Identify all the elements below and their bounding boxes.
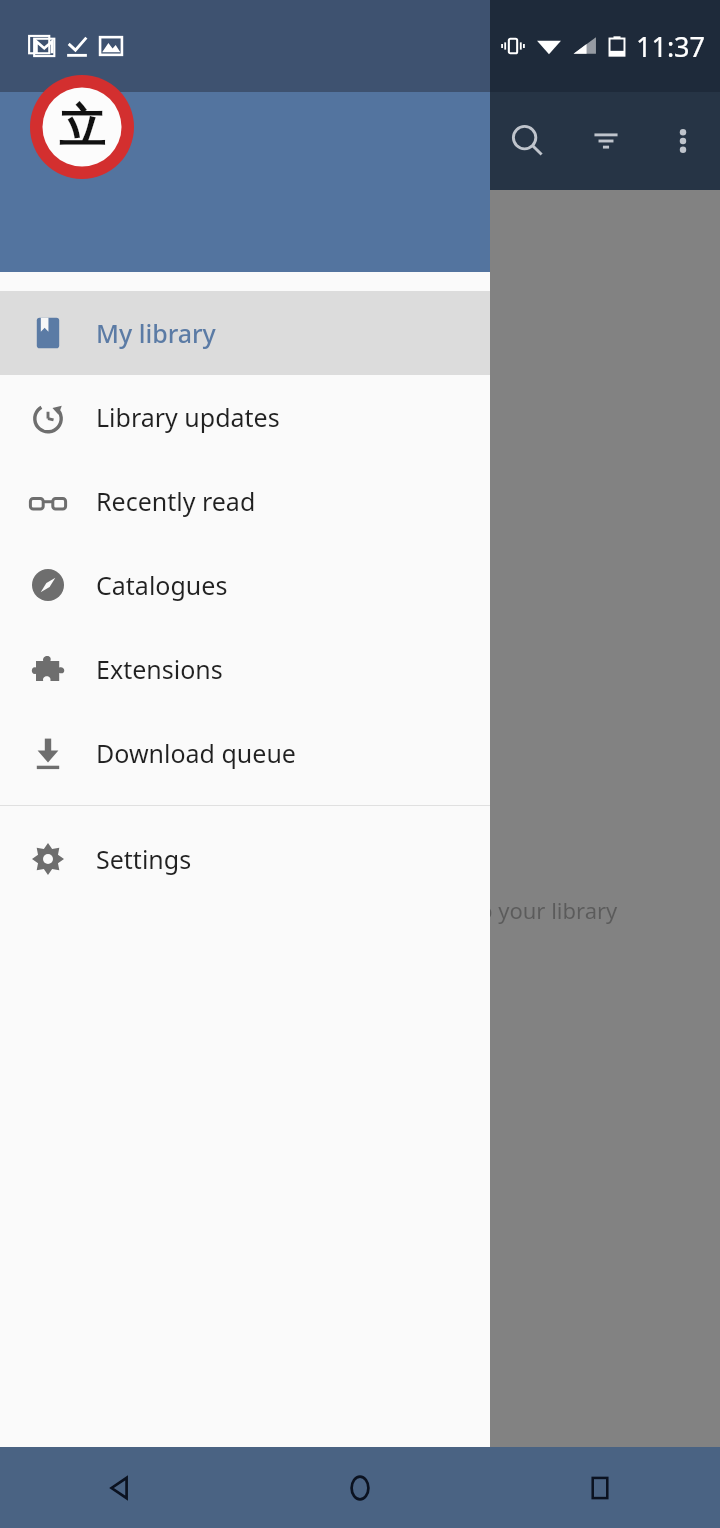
- button[interactable]: Search: [490, 92, 566, 190]
- button[interactable]: Library updates: [0, 375, 490, 459]
- button[interactable]: Settings: [0, 817, 490, 901]
- button[interactable]: Recently read: [0, 459, 490, 543]
- button[interactable]: Download queue: [0, 711, 490, 795]
- staticText: 11:37: [636, 28, 706, 65]
- button[interactable]: Extensions: [0, 627, 490, 711]
- staticText: Extensions: [96, 652, 223, 686]
- staticText: Settings: [96, 842, 192, 876]
- button[interactable]: My library: [0, 291, 490, 375]
- button[interactable]: Recent apps: [480, 1447, 720, 1528]
- button[interactable]: Catalogues: [0, 543, 490, 627]
- button[interactable]: More options: [646, 92, 720, 190]
- staticText: Library updates: [96, 400, 280, 434]
- staticText: 立: [30, 98, 134, 156]
- button[interactable]: Filter: [566, 92, 646, 190]
- staticText: Recently read: [96, 484, 256, 518]
- staticText: Download queue: [96, 736, 296, 770]
- staticText: My library: [96, 316, 216, 350]
- button[interactable]: Home: [240, 1447, 480, 1528]
- button[interactable]: Back: [0, 1447, 240, 1528]
- staticText: Catalogues: [96, 568, 228, 602]
- staticText: s to your library: [455, 895, 618, 925]
